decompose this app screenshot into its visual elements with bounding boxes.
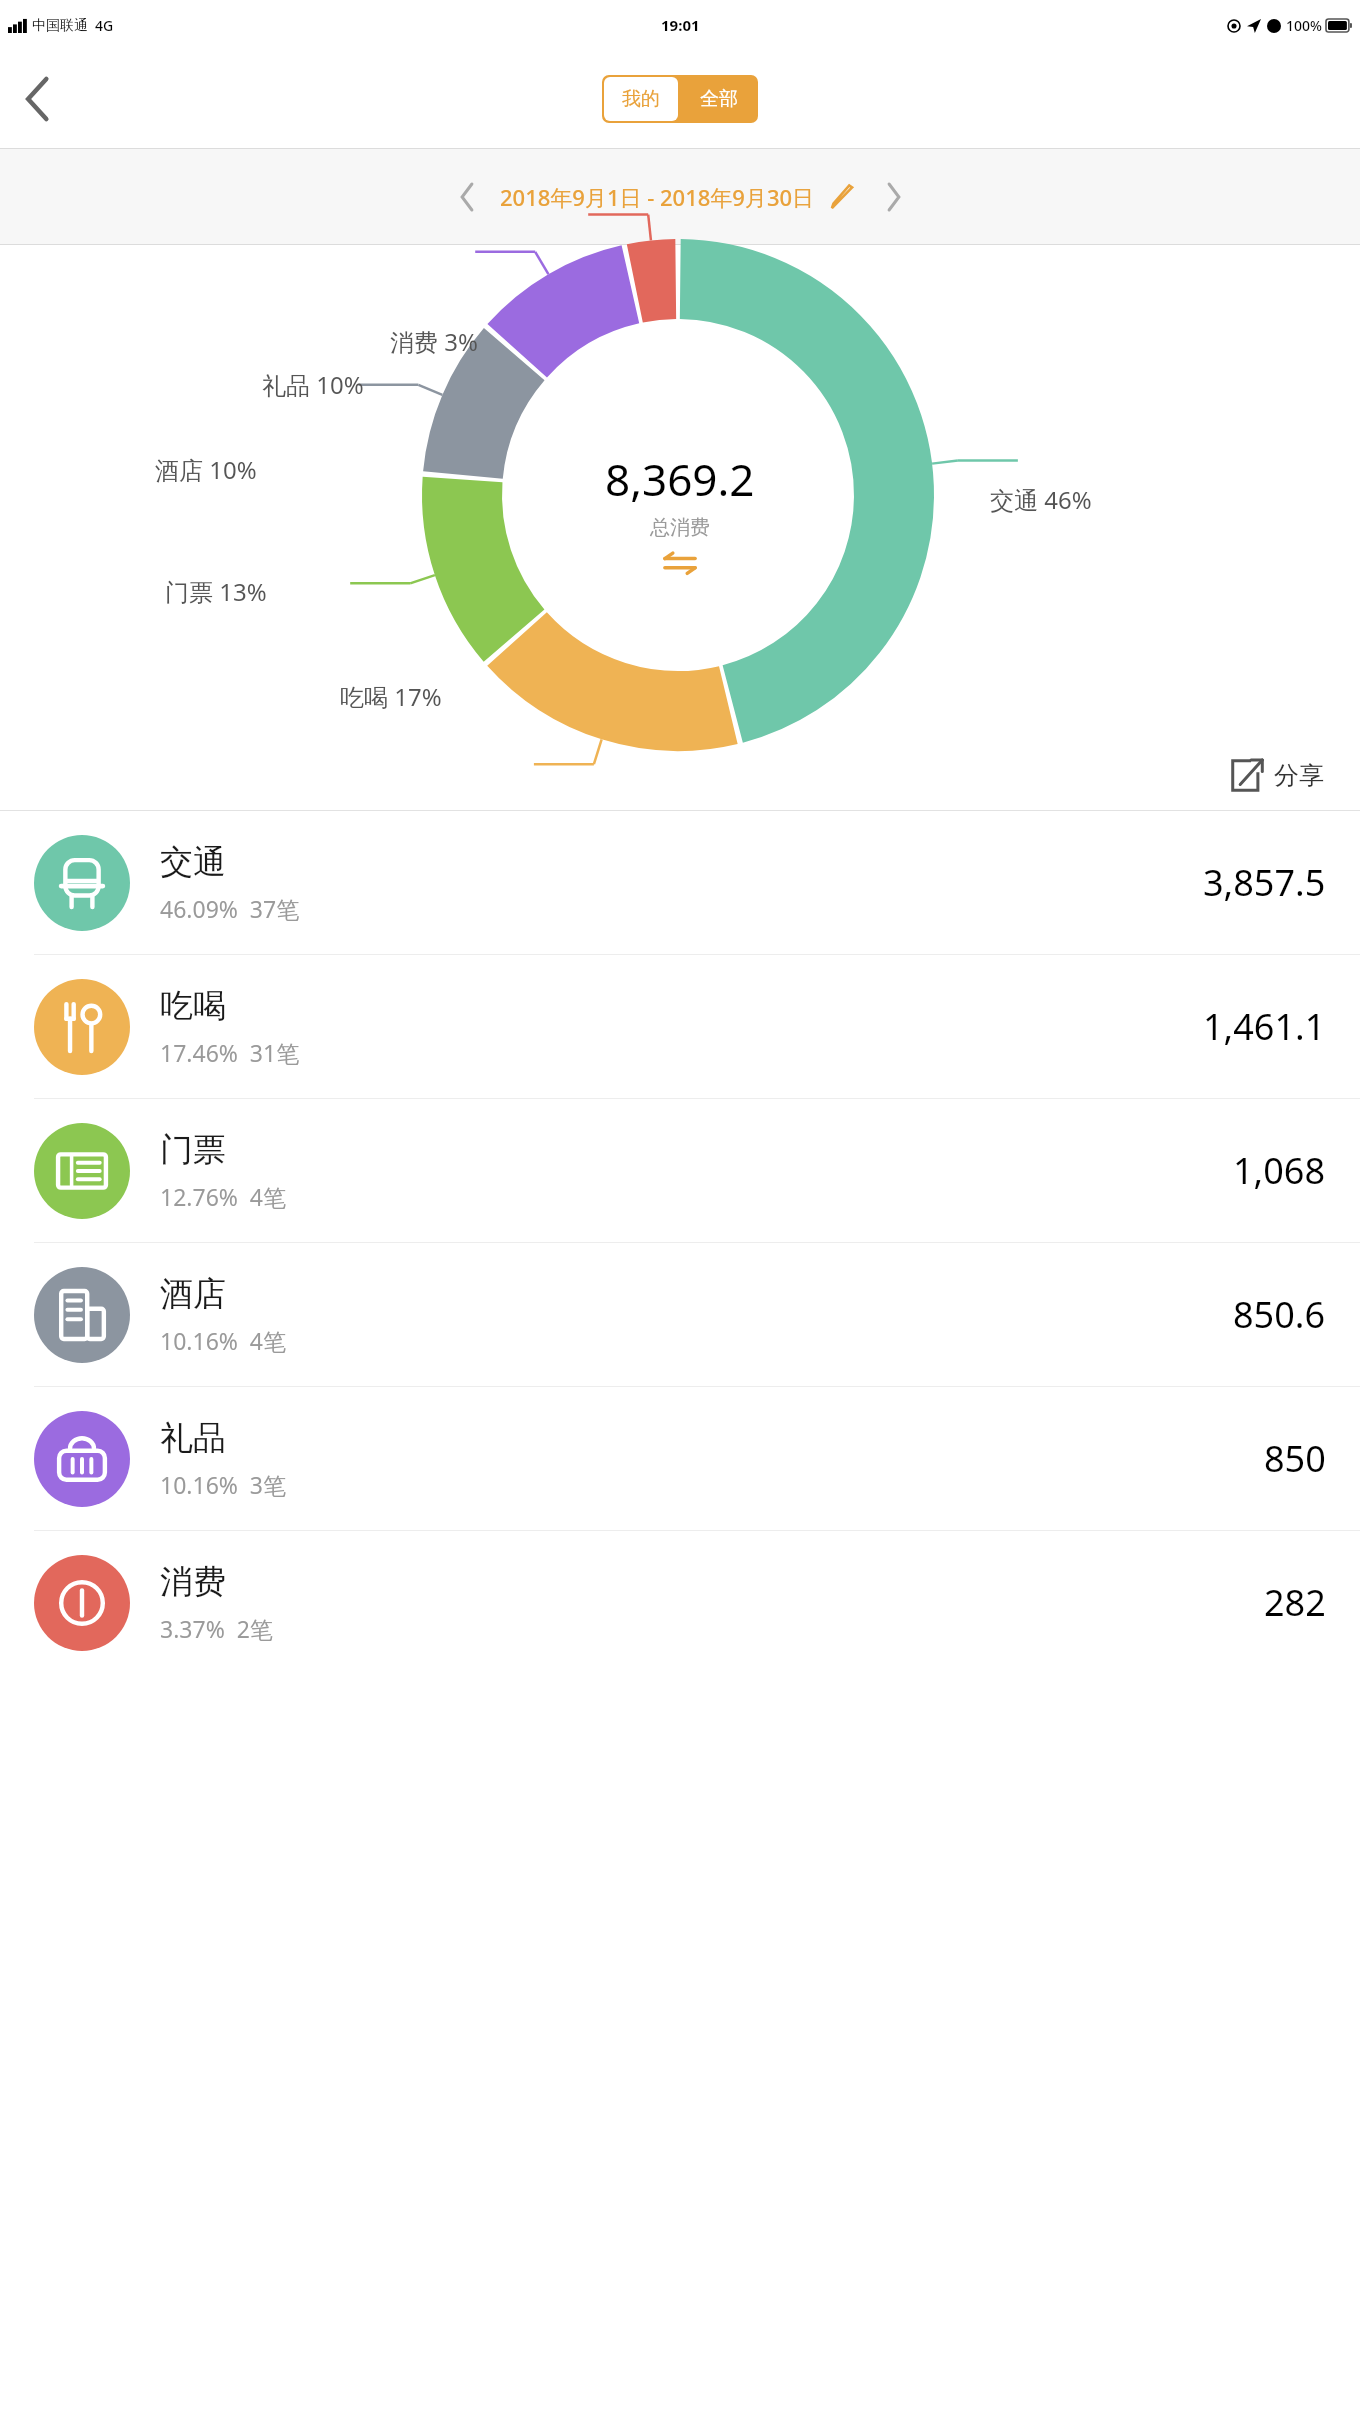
- staticText: 10.16% 3笔: [160, 1469, 287, 1500]
- staticText: 总消费: [650, 515, 710, 540]
- staticText: 12.76% 4笔: [160, 1181, 287, 1212]
- staticText: 19:01: [661, 15, 700, 35]
- staticText: 礼品 10%: [262, 368, 364, 401]
- button[interactable]: Previous: [444, 174, 490, 220]
- staticText: 100%: [1286, 16, 1322, 35]
- button[interactable]: 吃喝: [0, 955, 1360, 1098]
- staticText: 282: [1264, 1578, 1326, 1627]
- button[interactable]: Edit date: [827, 181, 859, 213]
- staticText: 酒店 10%: [155, 453, 257, 486]
- staticText: 1,068: [1233, 1146, 1326, 1195]
- button[interactable]: 分享: [1230, 758, 1324, 792]
- staticText: 吃喝: [160, 985, 226, 1027]
- staticText: 850.6: [1233, 1290, 1326, 1339]
- staticText: 我的: [622, 87, 660, 111]
- button[interactable]: Next: [871, 174, 917, 220]
- staticText: 46.09% 37笔: [160, 893, 300, 924]
- staticText: 全部: [700, 87, 738, 111]
- staticText: 分享: [1274, 760, 1324, 791]
- staticText: 850: [1264, 1434, 1326, 1483]
- staticText: 消费 3%: [390, 325, 478, 358]
- staticText: 消费: [160, 1561, 226, 1603]
- button[interactable]: 全部: [680, 75, 758, 123]
- staticText: 1,461.1: [1203, 1002, 1326, 1051]
- button[interactable]: 消费: [0, 1531, 1360, 1674]
- staticText: 中国联通: [32, 17, 88, 35]
- staticText: 4G: [95, 16, 114, 35]
- staticText: 门票: [160, 1129, 226, 1171]
- staticText: 17.46% 31笔: [160, 1037, 300, 1068]
- button[interactable]: 礼品: [0, 1387, 1360, 1530]
- button[interactable]: 我的: [604, 77, 678, 121]
- button[interactable]: 2018年9月1日 - 2018年9月30日: [500, 182, 815, 212]
- button[interactable]: 酒店: [0, 1243, 1360, 1386]
- staticText: 交通: [160, 841, 226, 883]
- staticText: 交通 46%: [990, 483, 1092, 516]
- button[interactable]: 门票: [0, 1099, 1360, 1242]
- button[interactable]: Back: [10, 71, 66, 127]
- staticText: 礼品: [160, 1417, 226, 1459]
- staticText: 酒店: [160, 1273, 226, 1315]
- staticText: 门票 13%: [165, 575, 267, 608]
- staticText: 3,857.5: [1203, 858, 1326, 907]
- staticText: 10.16% 4笔: [160, 1325, 287, 1356]
- staticText: 吃喝 17%: [340, 680, 442, 713]
- staticText: 3.37% 2笔: [160, 1613, 273, 1644]
- staticText: 8,369.2: [605, 449, 755, 509]
- button[interactable]: 交通: [0, 811, 1360, 954]
